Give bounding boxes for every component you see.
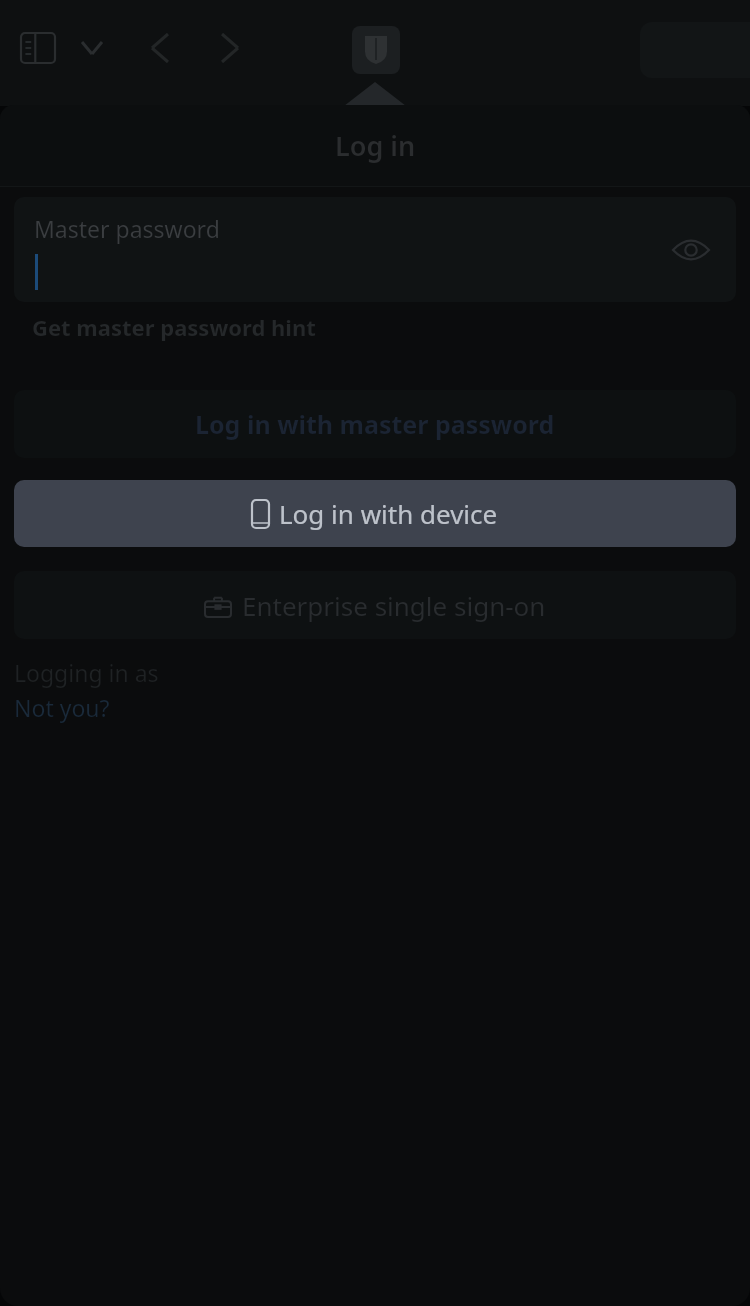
button[interactable]: Back [138, 26, 182, 70]
button[interactable]: Log in with device [14, 480, 736, 547]
staticText: Not you? [14, 692, 110, 723]
button[interactable]: Not you? [14, 692, 110, 723]
button[interactable]: Toggle visibility [664, 223, 718, 277]
staticText: Log in with master password [195, 407, 555, 441]
button[interactable]: Toggle sidebar [18, 28, 58, 68]
button[interactable]: History menu [72, 28, 112, 68]
button[interactable]: Forward [208, 26, 252, 70]
button[interactable]: Get master password hint [14, 308, 334, 346]
staticText: Logging in as [14, 657, 159, 688]
staticText: Log in [335, 127, 416, 164]
button[interactable]: Bitwarden extension [352, 26, 400, 74]
button[interactable]: Master password [14, 197, 736, 302]
staticText: Enterprise single sign-on [242, 588, 546, 623]
staticText: Master password [34, 213, 220, 244]
staticText: Get master password hint [32, 312, 316, 342]
button[interactable]: Enterprise single sign-on [14, 571, 736, 639]
staticText: Log in with device [279, 496, 498, 531]
button[interactable]: Log in with master password [14, 390, 736, 458]
